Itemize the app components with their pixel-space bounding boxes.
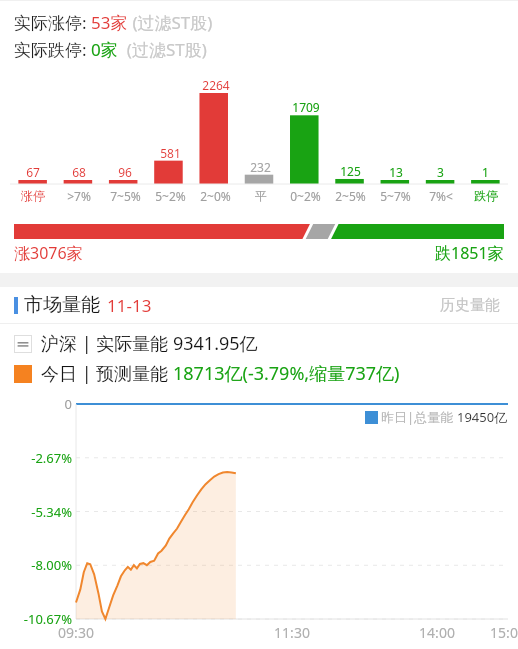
staticText: 实际跌停: [14,38,91,61]
staticText: 67 [26,164,40,180]
button[interactable]: 实际跌停: [14,38,518,61]
staticText: 涨停 [21,188,45,203]
staticText: 11-13 [107,294,152,317]
staticText: 历史量能 [440,296,500,315]
staticText: 7~5% [110,188,141,204]
button[interactable]: 涨停 [10,188,56,203]
button[interactable]: 7%< [418,188,463,204]
staticText: 0 [64,395,72,413]
other: 沪深实际量能图例 [14,335,32,353]
staticText: 跌停 [474,188,498,203]
staticText: 13 [389,164,403,180]
staticText: 15:00 [490,623,518,642]
button[interactable]: 2~0% [193,188,238,204]
button[interactable]: 7~5% [102,188,148,204]
staticText: >7% [67,188,91,204]
staticText: 今日 | 预测量能 [41,361,173,386]
button[interactable]: 0~2% [283,188,328,204]
button[interactable]: 沪深实际量能图例 [14,331,518,356]
staticText: 沪深 | 实际量能 9341.95亿 [41,331,258,356]
staticText: 232 [250,159,271,175]
staticText: -2.67% [31,449,72,467]
staticText: 1709 [292,99,320,115]
staticText: 2264 [202,77,230,93]
staticText: 3 [437,164,444,180]
staticText: 0~2% [290,188,321,204]
staticText: 19450亿 [457,408,508,426]
staticText: 市场量能 [24,293,100,317]
staticText: 14:00 [419,623,455,642]
staticText: 18713亿(-3.79%,缩量737亿) [173,361,400,386]
staticText: 5~2% [155,188,186,204]
staticText: 09:30 [58,623,94,642]
button[interactable]: 跌停 [463,188,508,203]
staticText: -8.00% [31,556,72,574]
staticText: 1 [482,164,489,180]
staticText: 581 [160,145,181,161]
staticText: 125 [340,163,361,179]
button[interactable]: 今日预测量能图例 [14,361,518,386]
staticText: 68 [72,164,86,180]
staticText: 涨3076家 [14,242,83,264]
staticText: 2~0% [200,188,231,204]
staticText: (过滤ST股) [118,38,207,61]
button[interactable]: 平 [238,188,283,203]
button[interactable]: 5~2% [148,188,193,204]
button[interactable]: 昨日|总量能 [365,408,508,426]
button[interactable]: 实际涨停: [14,11,518,34]
button[interactable]: 历史量能 [436,292,504,319]
staticText: 平 [255,188,267,203]
staticText: 7%< [429,188,453,204]
staticText: 5~7% [380,188,411,204]
staticText: 实际涨停: [14,11,91,34]
staticText: 2~5% [335,188,366,204]
button[interactable]: 5~7% [373,188,418,204]
staticText: 0家 [91,38,118,61]
button[interactable]: 2~5% [328,188,373,204]
staticText: 跌1851家 [435,242,504,264]
staticText: -10.67% [23,610,72,628]
staticText: (过滤ST股) [128,11,213,34]
staticText: 昨日|总量能 [381,408,457,426]
staticText: 96 [118,164,132,180]
button[interactable]: 涨跌家数占比 [14,224,504,239]
staticText: 53家 [91,11,128,34]
staticText: -5.34% [31,503,72,521]
button[interactable]: >7% [56,188,102,204]
staticText: 11:30 [274,623,310,642]
